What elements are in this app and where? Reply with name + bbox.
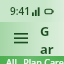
staticText: Care (44, 56, 64, 64)
staticText: 9:41 (10, 4, 30, 18)
button[interactable]: Care (43, 56, 64, 64)
button[interactable]: Plants (22, 56, 43, 64)
button[interactable]: All (0, 56, 22, 64)
staticText: All (6, 56, 17, 64)
staticText: Plants (22, 56, 43, 64)
staticText: Garden (40, 22, 56, 56)
button[interactable]: Menu (8, 26, 34, 52)
